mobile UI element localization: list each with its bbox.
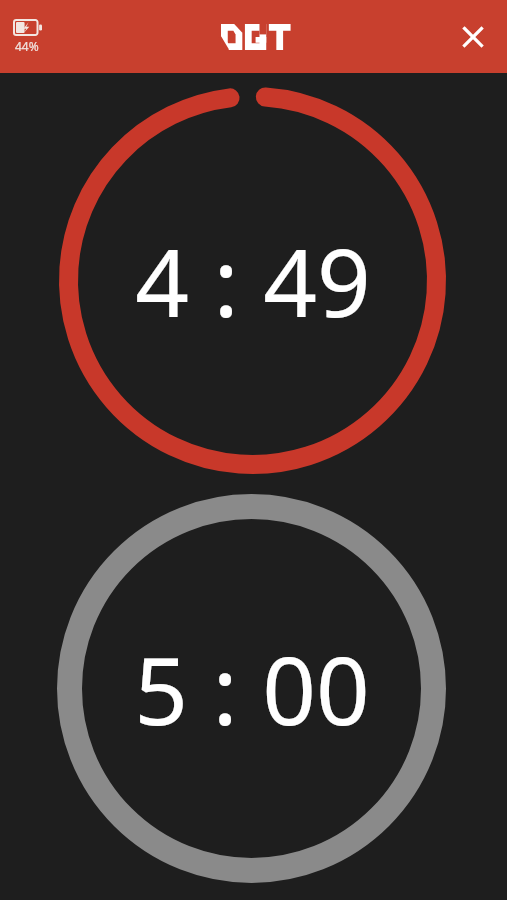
button[interactable]: 4 : 49	[59, 87, 446, 474]
button[interactable]: Close	[451, 15, 495, 59]
staticText: 5 : 00	[134, 625, 370, 753]
button[interactable]: 5 : 00	[57, 494, 446, 883]
button[interactable]: Battery 44 percent, charging	[14, 20, 42, 54]
staticText: 4 : 49	[135, 217, 371, 345]
staticText: 44%	[15, 38, 39, 54]
